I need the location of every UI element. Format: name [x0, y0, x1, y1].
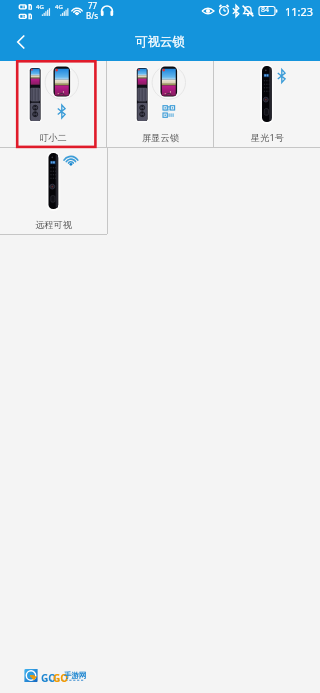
staticText: GO: [53, 671, 69, 685]
staticText: 手游网: [64, 671, 87, 680]
button[interactable]: 星光1号: [214, 61, 320, 147]
button[interactable]: 屏显云锁: [107, 61, 213, 147]
staticText: 4G: [36, 3, 44, 11]
staticText: 叮小二: [39, 132, 67, 144]
staticText: 远程可视: [35, 219, 72, 231]
button[interactable]: Back: [0, 22, 42, 61]
staticText: GO: [41, 671, 57, 685]
staticText: B/s: [86, 10, 99, 21]
staticText: 星光1号: [251, 131, 284, 144]
button[interactable]: 叮小二: [0, 61, 106, 147]
staticText: 77: [88, 0, 98, 11]
staticText: 可视云锁: [135, 34, 185, 50]
button[interactable]: 远程可视: [0, 148, 107, 234]
staticText: 11:23: [285, 4, 314, 19]
staticText: 4G: [55, 3, 63, 11]
staticText: 84: [261, 5, 270, 15]
staticText: 屏显云锁: [142, 132, 179, 144]
